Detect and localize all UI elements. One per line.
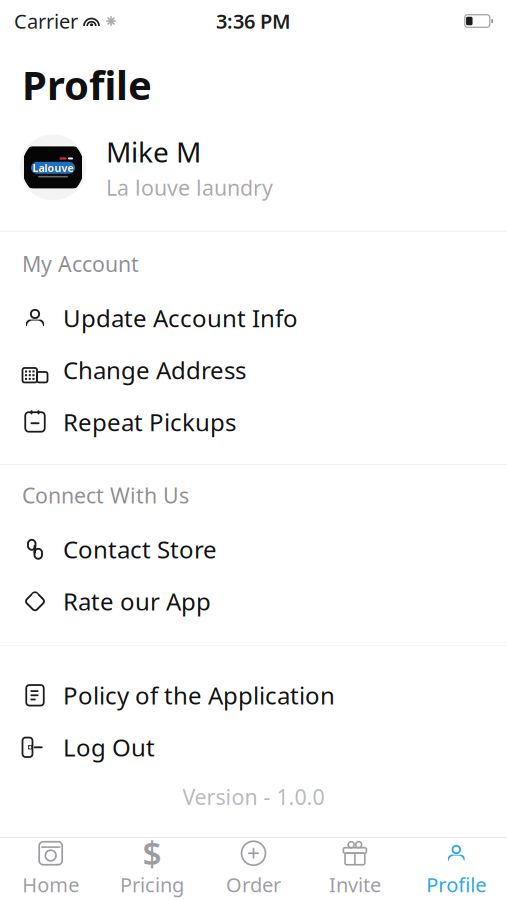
button[interactable]: Order xyxy=(203,840,304,898)
staticText: Profile xyxy=(426,871,486,898)
button[interactable]: Change Address xyxy=(0,344,507,396)
staticText: Mike M xyxy=(106,133,201,170)
staticText: Carrier xyxy=(14,8,78,34)
button[interactable]: Contact Store xyxy=(0,523,507,575)
staticText: Lalouve xyxy=(32,161,73,175)
staticText: Invite xyxy=(329,871,381,898)
staticText: Log Out xyxy=(63,731,155,763)
button[interactable]: Home xyxy=(0,840,101,898)
button[interactable]: Repeat Pickups xyxy=(0,396,507,448)
staticText: Order xyxy=(226,871,281,898)
staticText: La louve laundry xyxy=(106,173,273,202)
staticText: Profile xyxy=(22,58,152,111)
staticText: Policy of the Application xyxy=(63,679,335,711)
staticText: Update Account Info xyxy=(63,302,298,334)
staticText: My Account xyxy=(22,250,139,278)
staticText: Version - 1.0.0 xyxy=(182,783,324,811)
staticText: Pricing xyxy=(120,871,184,898)
button[interactable]: $ xyxy=(101,840,203,898)
button[interactable]: Log Out xyxy=(0,721,507,773)
button[interactable]: Update Account Info xyxy=(0,292,507,344)
button[interactable]: Policy of the Application xyxy=(0,669,507,721)
staticText: Rate our App xyxy=(63,585,211,617)
button[interactable]: Profile xyxy=(406,840,507,898)
staticText: Contact Store xyxy=(63,533,217,565)
staticText: Connect With Us xyxy=(22,481,189,509)
staticText: Repeat Pickups xyxy=(63,406,236,438)
staticText: 3:36 PM xyxy=(216,8,291,34)
staticText: Change Address xyxy=(63,354,246,386)
button[interactable]: Rate our App xyxy=(0,575,507,627)
staticText: $ xyxy=(143,831,162,875)
staticText: Home xyxy=(22,871,79,898)
button[interactable]: Invite xyxy=(304,840,406,898)
